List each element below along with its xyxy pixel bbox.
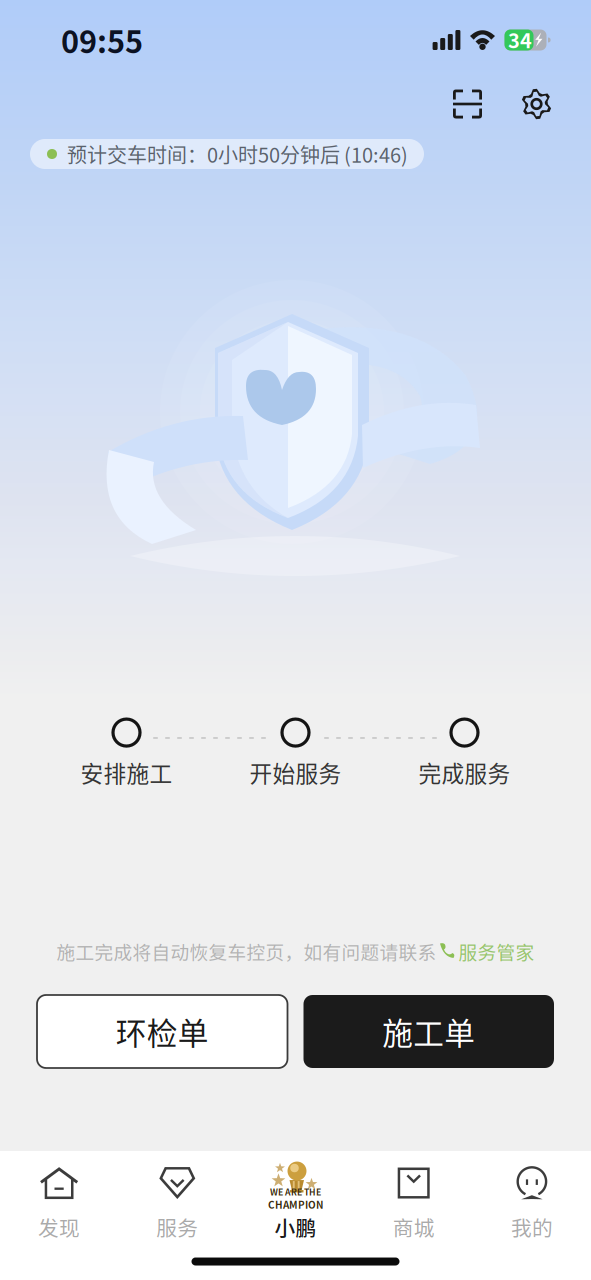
staticText: WE ARE THE — [270, 1185, 321, 1198]
staticText: 发现 — [38, 1212, 80, 1242]
staticText: 预计交车时间：0小时50分钟后 (10:46) — [67, 139, 408, 168]
button[interactable]: 服务管家 — [436, 938, 534, 965]
staticText: 开始服务 — [249, 756, 341, 789]
staticText: 09:55 — [61, 18, 143, 62]
staticText: 服务管家 — [458, 938, 534, 965]
staticText: 34 — [508, 25, 532, 54]
button[interactable]: 发现 — [0, 1146, 118, 1244]
button[interactable]: 施工单 — [303, 995, 554, 1068]
staticText: 服务 — [156, 1212, 198, 1242]
button[interactable]: 我的 — [473, 1146, 591, 1244]
button[interactable]: WE ARE THE — [236, 1146, 355, 1244]
staticText: 完成服务 — [418, 756, 510, 789]
staticText: 安排施工 — [80, 756, 172, 789]
staticText: 我的 — [511, 1212, 553, 1242]
staticText: 小鹏 — [274, 1212, 316, 1242]
staticText: 环检单 — [116, 1009, 209, 1054]
staticText: 施工完成将自动恢复车控页，如有问题请联系 — [56, 938, 436, 965]
staticText: 施工单 — [382, 1009, 475, 1054]
staticText: CHAMPION — [268, 1197, 323, 1212]
button[interactable]: 服务 — [118, 1146, 236, 1244]
button[interactable]: 环检单 — [37, 995, 287, 1068]
button[interactable]: Settings — [521, 88, 552, 119]
staticText: 商城 — [393, 1212, 435, 1242]
button[interactable]: 商城 — [355, 1146, 473, 1244]
button[interactable]: Scan — [453, 89, 482, 118]
